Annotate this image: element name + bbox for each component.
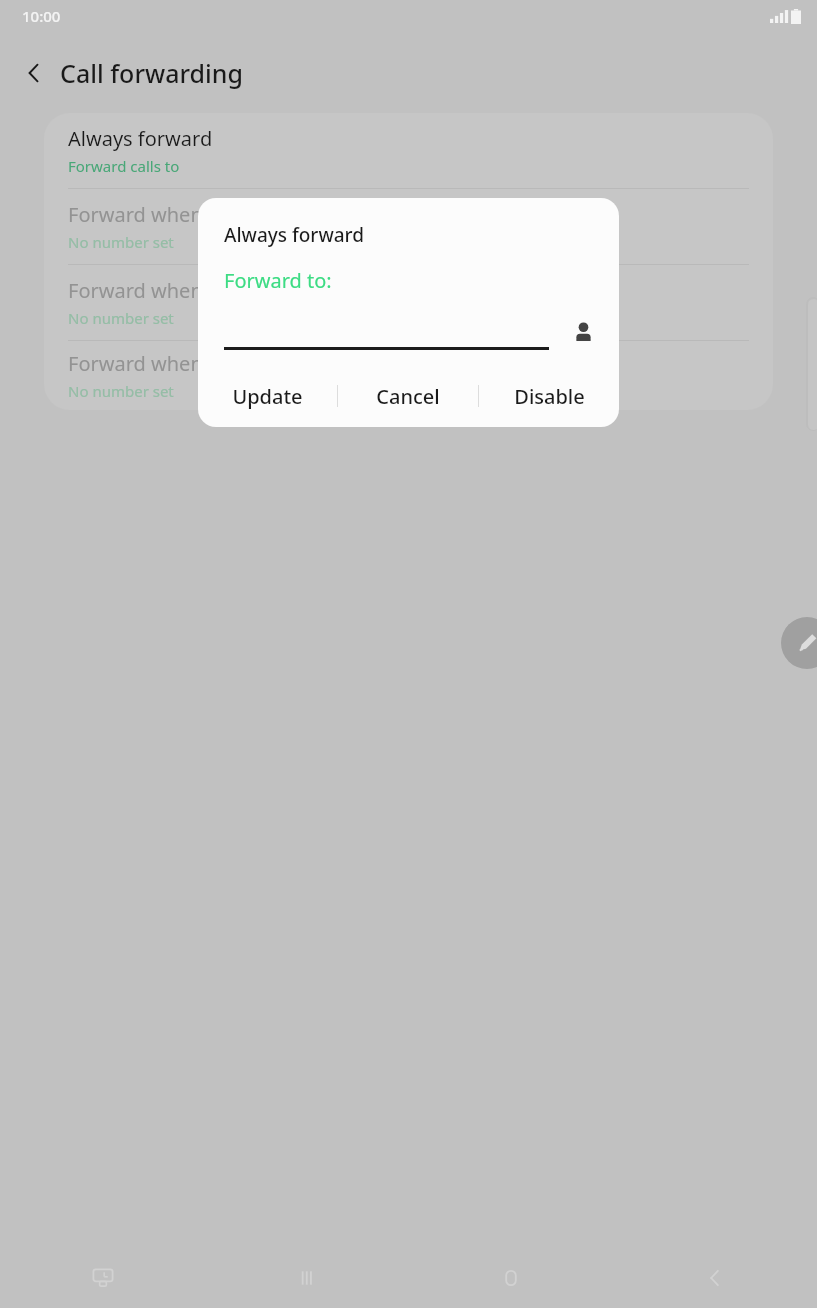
button[interactable]: Edit <box>781 617 817 669</box>
button[interactable]: Update <box>198 374 337 418</box>
staticText: Always forward <box>224 222 365 248</box>
staticText: Forward when unanswered <box>68 277 325 304</box>
staticText: No number set <box>68 381 174 401</box>
staticText: Forward to: <box>224 267 332 294</box>
button[interactable] <box>224 317 549 350</box>
staticText: Cancel <box>376 383 440 410</box>
staticText: Disable <box>514 383 585 410</box>
staticText: No number set <box>68 308 174 328</box>
staticText: Forward calls to <box>68 156 180 176</box>
button[interactable]: Choose contact <box>563 312 603 352</box>
button[interactable]: Forward when busy <box>44 189 773 264</box>
button[interactable]: Forward when unanswered <box>44 265 773 340</box>
button[interactable]: Disable <box>479 374 619 418</box>
staticText: Forward when unreachable <box>68 350 325 377</box>
staticText: Forward when busy <box>68 201 253 228</box>
staticText: Call forwarding <box>60 56 243 90</box>
button[interactable]: Forward when unreachable <box>44 341 773 410</box>
button[interactable]: Back <box>12 51 56 95</box>
button[interactable]: Cancel <box>338 374 478 418</box>
staticText: Always forward <box>68 125 213 152</box>
button[interactable]: Always forward <box>44 113 773 188</box>
staticText: 10:00 <box>22 6 61 26</box>
staticText: No number set <box>68 232 174 252</box>
staticText: Update <box>232 383 303 410</box>
